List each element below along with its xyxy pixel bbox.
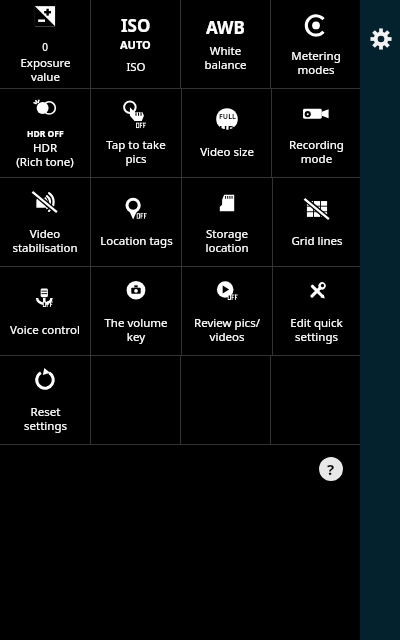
other: Review pics videos — [209, 278, 245, 314]
button[interactable]: Storage location — [182, 178, 272, 266]
staticText: 0 — [42, 40, 48, 54]
button[interactable]: Reset settings — [0, 356, 90, 444]
other: HDR — [30, 98, 60, 128]
button[interactable]: AWB — [181, 0, 270, 88]
staticText: HD — [219, 122, 236, 137]
staticText: AUTO — [120, 37, 151, 52]
staticText: Video size — [200, 144, 254, 160]
staticText: Tap to take pics — [106, 137, 166, 166]
staticText: Exposure value — [20, 55, 71, 84]
staticText: Metering modes — [291, 48, 341, 77]
button[interactable]: FULL — [182, 89, 271, 177]
other: Reset settings — [27, 367, 63, 403]
button[interactable]: Metering modes — [271, 0, 360, 88]
staticText: ISO — [126, 59, 146, 75]
staticText: Storage location — [205, 226, 249, 255]
button[interactable]: Recording mode — [272, 89, 360, 177]
other: Tap to take pics — [118, 100, 154, 136]
button[interactable]: Edit quick settings — [273, 267, 360, 355]
staticText: Review pics/ videos — [194, 315, 260, 344]
other: Exposure value — [27, 4, 63, 40]
staticText: HDR (Rich tone) — [16, 140, 74, 169]
button[interactable]: Video stabilisation — [0, 178, 90, 266]
staticText: Recording mode — [289, 137, 344, 166]
staticText: ISO — [121, 14, 151, 37]
staticText: Reset settings — [24, 404, 67, 433]
button[interactable]: HDR — [0, 89, 90, 177]
staticText: Voice control — [10, 322, 80, 338]
staticText: Video stabilisation — [12, 226, 78, 255]
other: Grid lines — [299, 196, 335, 232]
button[interactable]: Exposure value — [0, 0, 90, 88]
button[interactable]: Settings — [368, 26, 394, 52]
button[interactable]: Review pics videos — [182, 267, 272, 355]
staticText: HDR OFF — [27, 128, 64, 140]
other: Edit quick settings — [299, 278, 335, 314]
staticText: FULL — [219, 112, 236, 122]
other: The volume key — [118, 278, 154, 314]
button[interactable]: Grid lines — [273, 178, 360, 266]
button[interactable]: The volume key — [91, 267, 181, 355]
button[interactable]: Help — [318, 456, 344, 482]
other: Storage location — [209, 189, 245, 225]
staticText: The volume key — [104, 315, 168, 344]
staticText: Location tags — [100, 233, 173, 249]
other: Voice control — [27, 285, 63, 321]
staticText: AWB — [206, 16, 245, 39]
button[interactable]: ISO — [91, 0, 180, 88]
button[interactable]: Location tags — [91, 178, 181, 266]
staticText: Edit quick settings — [290, 315, 343, 344]
other: Video stabilisation — [27, 189, 63, 225]
button[interactable]: Tap to take pics — [91, 89, 181, 177]
staticText: Grid lines — [291, 233, 343, 249]
other: Recording mode — [298, 100, 334, 136]
other: Metering modes — [298, 11, 334, 47]
staticText: ? — [327, 459, 335, 479]
other: Location tags — [118, 196, 154, 232]
staticText: White balance — [204, 43, 247, 72]
button[interactable]: Voice control — [0, 267, 90, 355]
